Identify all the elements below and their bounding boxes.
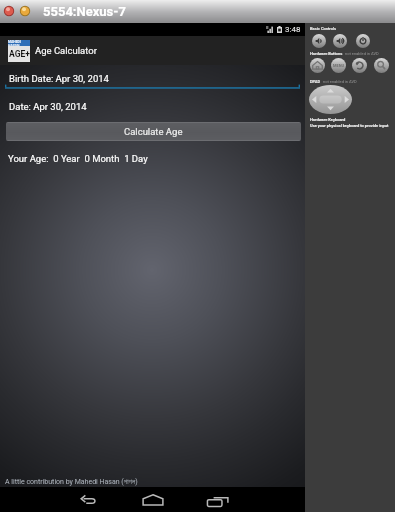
button[interactable]: Calculate Age	[6, 122, 301, 141]
staticText: Your Age: 0 Year 0 Month 1 Day	[8, 153, 148, 164]
staticText: Use your physical keyboard to provide in…	[310, 123, 389, 128]
staticText: DPAD	[310, 79, 321, 84]
staticText: 3:48	[285, 25, 301, 34]
staticText: Calculate Age	[124, 126, 183, 137]
button[interactable]: Search	[374, 58, 389, 73]
staticText: Hardware Buttons	[310, 51, 343, 56]
staticText: Date: Apr 30, 2014	[9, 101, 87, 112]
staticText: Basic Controls	[310, 26, 337, 31]
button[interactable]: Home	[131, 487, 175, 512]
staticText: Birth Date: Apr 30, 2014	[9, 73, 109, 84]
staticText: AGE+	[9, 49, 30, 59]
button[interactable]: D-pad	[309, 85, 352, 114]
button[interactable]: Back	[352, 58, 367, 73]
staticText: A little contribution by Mahedi Hasan (প…	[5, 478, 138, 486]
staticText: Hardware Keyboard	[310, 117, 346, 122]
staticText: MAHEDI HASAN	[8, 40, 30, 46]
button[interactable]: Volume down	[312, 34, 326, 48]
staticText: not enabled in AVD	[345, 51, 379, 56]
button[interactable]: Age Calculator icon	[8, 40, 30, 62]
staticText: 5554:Nexus-7	[43, 4, 126, 19]
staticText: MENU	[333, 63, 345, 68]
button[interactable]: Power	[356, 34, 370, 48]
staticText: Age Calculator	[35, 45, 97, 56]
button[interactable]: Recent apps	[196, 487, 240, 512]
button[interactable]: Home	[310, 58, 325, 73]
button[interactable]: Back	[66, 487, 110, 512]
staticText: not enabled in AVD	[323, 79, 357, 84]
button[interactable]: Menu	[331, 58, 346, 73]
button[interactable]: Birth Date: Apr 30, 2014	[0, 66, 305, 90]
button[interactable]: Volume up	[333, 34, 347, 48]
